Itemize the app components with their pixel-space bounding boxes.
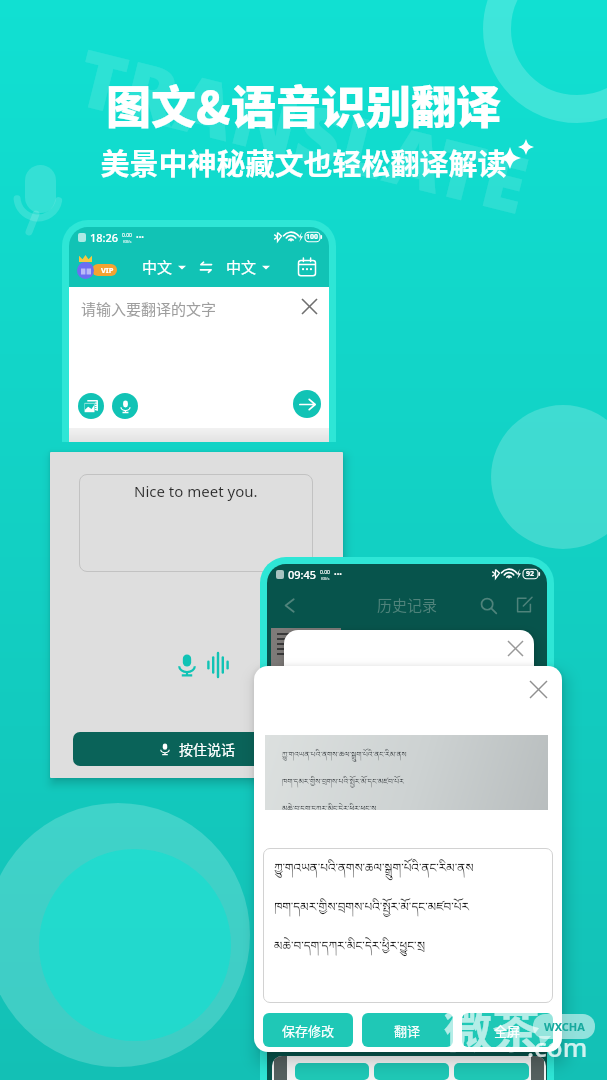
staticText: ••• bbox=[334, 570, 342, 580]
button[interactable] bbox=[295, 1063, 369, 1080]
staticText: .com bbox=[527, 1029, 588, 1064]
button[interactable]: Edit bbox=[513, 594, 535, 616]
button[interactable]: Search bbox=[477, 594, 499, 616]
button[interactable]: Photo translate bbox=[78, 393, 104, 419]
button[interactable]: Profile bbox=[77, 255, 117, 279]
button[interactable]: 翻译 bbox=[362, 1013, 453, 1047]
staticText: 翻译 bbox=[394, 1021, 421, 1040]
staticText: KB/s bbox=[321, 576, 330, 581]
button[interactable]: Translate bbox=[293, 390, 321, 418]
staticText: KB/s bbox=[123, 239, 132, 244]
staticText: 历史记录 bbox=[377, 594, 438, 616]
staticText: 中文 bbox=[142, 256, 173, 278]
staticText: 全屏 bbox=[494, 1021, 521, 1040]
staticText: ཁག་དམར་གྱིས་བྲགས་པའི་སྤྱོར་མོ་དང་མཛབ་པོར bbox=[274, 893, 469, 927]
staticText: 92 bbox=[526, 569, 535, 579]
staticText: VIP bbox=[101, 265, 114, 275]
staticText: TRANSLATE bbox=[0, 5, 607, 255]
staticText: 请输入要翻译的文字 bbox=[81, 298, 217, 320]
button[interactable] bbox=[454, 1063, 529, 1080]
button[interactable]: 按住说话 bbox=[73, 732, 320, 766]
staticText: 美景中神秘藏文也轻松翻译解读 bbox=[0, 141, 607, 183]
button[interactable]: 保存修改 bbox=[263, 1013, 353, 1047]
button[interactable]: Close bbox=[505, 638, 525, 658]
staticText: 0.00 bbox=[122, 232, 132, 239]
staticText: 中文 bbox=[226, 256, 257, 278]
button[interactable]: 全屏 bbox=[462, 1013, 553, 1047]
staticText: 图文&语音识别翻译 bbox=[0, 72, 607, 137]
staticText: Nice to meet you. bbox=[134, 481, 258, 501]
staticText: ཀྱུ་གའཡན་པའི་ནགས་ཆལ་སྒྲུག་པོའི་ནང་རིམ་ནས bbox=[282, 746, 407, 767]
button[interactable] bbox=[374, 1063, 449, 1080]
button[interactable]: Back bbox=[278, 594, 300, 616]
staticText: 18:26 bbox=[90, 230, 119, 245]
staticText: 微茶 bbox=[444, 991, 541, 1061]
staticText: 0.00 bbox=[320, 569, 330, 576]
staticText: 100 bbox=[306, 232, 319, 242]
staticText: ••• bbox=[136, 233, 144, 243]
staticText: 09:45 bbox=[288, 567, 317, 582]
staticText: 按住说话 bbox=[179, 739, 235, 759]
staticText: ཁག་དམར་གྱིས་བྲགས་པའི་སྤྱོར་མོ་དང་མཛབ་པོར bbox=[282, 773, 404, 794]
button[interactable]: Voice input bbox=[112, 393, 138, 419]
button[interactable]: Calendar bbox=[295, 255, 319, 279]
button[interactable]: Clear bbox=[299, 296, 319, 316]
staticText: ཀྱུ་གའཡན་པའི་ནགས་ཆལ་སྒྲུག་པོའི་ནང་རིམ་ནས bbox=[274, 854, 474, 888]
staticText: WXCHA bbox=[544, 1019, 585, 1034]
staticText: མཆེ་བ་དག་དཀར་མིང་དེར་ཕྱིར་ཕྱུང་སྲ bbox=[274, 932, 425, 966]
staticText: 保存修改 bbox=[282, 1021, 335, 1040]
button[interactable]: Close bbox=[527, 678, 549, 700]
staticText: མཆེ་བ་དག་དཀར་མིང་དེར་ཕྱིར་ཕྱུང་སྲ bbox=[282, 800, 377, 810]
